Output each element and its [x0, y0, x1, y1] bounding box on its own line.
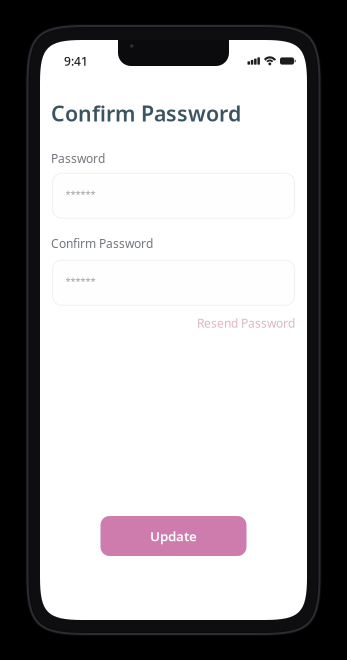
staticText: Confirm Password	[51, 235, 153, 251]
button[interactable]: Update	[100, 516, 246, 556]
button[interactable]: ******	[52, 173, 294, 218]
staticText: Resend Password	[197, 315, 295, 331]
staticText: 9:41	[64, 53, 88, 69]
staticText: Update	[150, 527, 197, 545]
button[interactable]: Resend Password	[197, 315, 295, 331]
staticText: Password	[51, 150, 105, 166]
button[interactable]: ******	[52, 260, 294, 305]
staticText: Confirm Password	[51, 99, 241, 127]
staticText: ******	[65, 188, 95, 200]
staticText: ******	[65, 275, 95, 287]
